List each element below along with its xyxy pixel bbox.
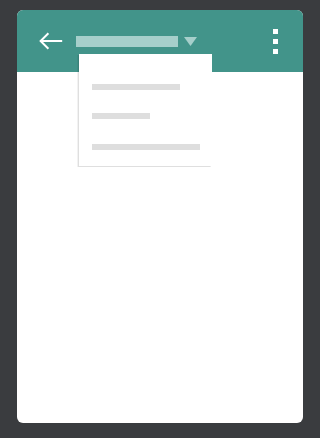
button[interactable] (79, 133, 212, 161)
button[interactable]: Navigate up (29, 19, 73, 63)
button[interactable]: Select item (76, 21, 197, 61)
button[interactable] (79, 73, 212, 101)
button[interactable] (79, 102, 212, 130)
button[interactable]: More options (253, 19, 297, 63)
